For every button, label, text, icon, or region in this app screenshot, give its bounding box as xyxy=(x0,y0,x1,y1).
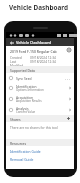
button[interactable]: Vehicle info xyxy=(66,47,72,53)
staticText: Content Value xyxy=(16,110,36,114)
staticText: Sync Seed xyxy=(16,76,32,80)
staticText: Removal Guide xyxy=(10,157,34,161)
staticText: Supported Data xyxy=(10,68,35,72)
button[interactable]: Identification xyxy=(6,83,74,93)
staticText: Vehicle Dashboard xyxy=(9,3,69,12)
button[interactable]: Back xyxy=(9,40,14,45)
button[interactable]: Sync Seed xyxy=(6,73,74,83)
button[interactable]: Acquisition xyxy=(6,93,74,104)
staticText: Shares xyxy=(10,117,21,121)
staticText: 09/18/2024 12:34 xyxy=(30,60,56,64)
staticText: Analysis xyxy=(16,106,29,110)
staticText: Resources xyxy=(10,141,27,145)
staticText: 09/18/2024 12:34 xyxy=(30,56,56,60)
staticText: Created xyxy=(10,56,30,60)
staticText: Options Information xyxy=(16,88,44,92)
staticText: Acquisition xyxy=(16,95,34,99)
staticText: Identification xyxy=(16,84,37,88)
staticText: Acquisition Results xyxy=(16,99,42,103)
button[interactable]: Removal Guide xyxy=(6,157,74,163)
staticText: - - - xyxy=(65,76,71,81)
staticText: There are no shares for this tool xyxy=(10,126,58,130)
staticText: 2019 Ford F-150 Regular Cab xyxy=(10,49,57,54)
button[interactable]: Identification Guide xyxy=(6,149,74,155)
button[interactable]: Add share xyxy=(66,116,71,121)
staticText: Identification Guide xyxy=(10,149,41,153)
button[interactable]: Analysis xyxy=(6,104,74,115)
staticText: Vehicle Dashboard xyxy=(16,40,52,45)
staticText: Last Modified xyxy=(10,60,30,68)
